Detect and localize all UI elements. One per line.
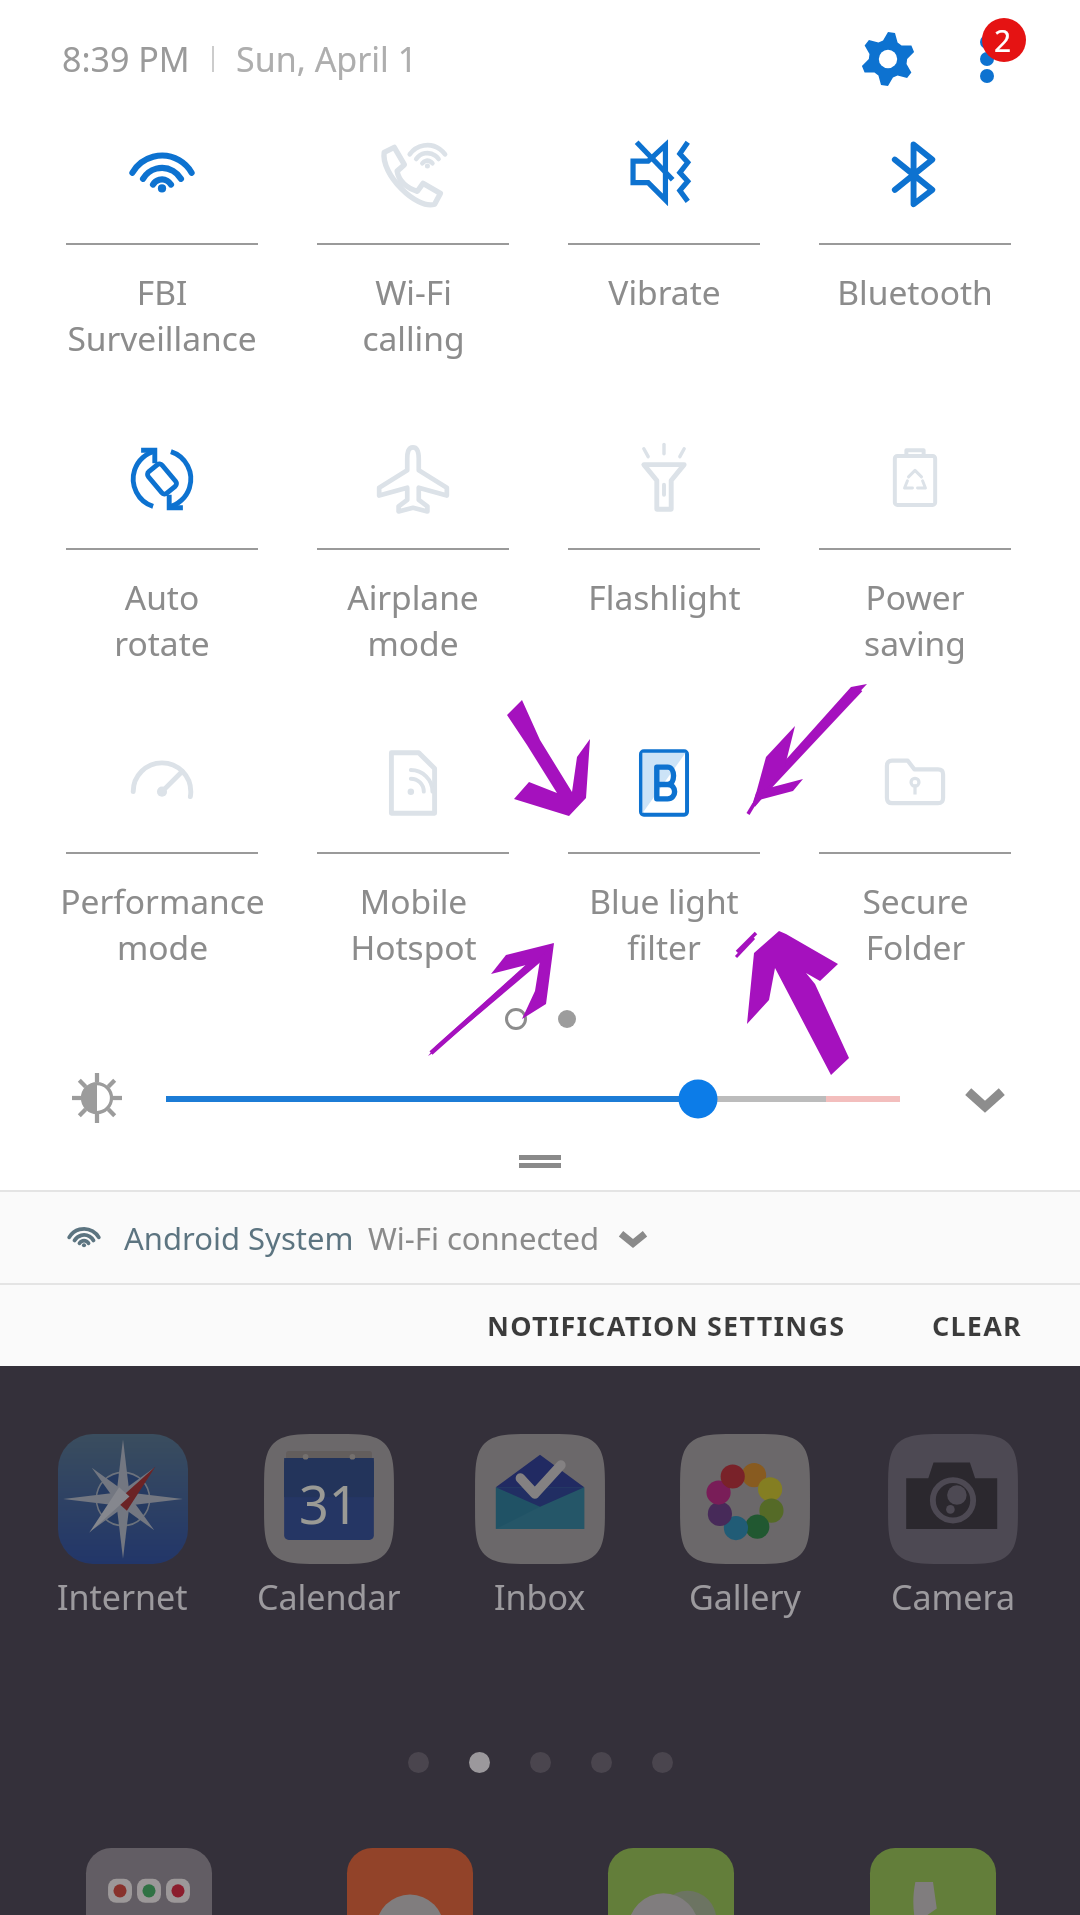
button[interactable]: Android System bbox=[0, 1192, 1080, 1283]
staticText: Performance mode bbox=[60, 878, 265, 970]
button[interactable]: Inbox bbox=[440, 1434, 640, 1624]
button[interactable]: Auto brightness bbox=[62, 1063, 132, 1133]
button[interactable] bbox=[347, 1848, 473, 1915]
staticText: Flashlight bbox=[588, 574, 741, 620]
button[interactable]: Power saving bbox=[790, 419, 1040, 659]
button[interactable] bbox=[870, 1848, 996, 1915]
button[interactable]: FBI Surveillance bbox=[37, 114, 287, 354]
staticText: Camera bbox=[891, 1574, 1015, 1620]
button[interactable]: Mobile Hotspot bbox=[288, 723, 538, 963]
staticText: 2 bbox=[994, 20, 1012, 61]
staticText: 31 bbox=[299, 1468, 359, 1539]
button[interactable]: Blue light filter bbox=[539, 723, 789, 963]
button[interactable]: Secure Folder bbox=[790, 723, 1040, 963]
button[interactable]: Auto rotate bbox=[37, 419, 287, 659]
button[interactable]: CLEAR bbox=[916, 1293, 1038, 1358]
button[interactable]: Flashlight bbox=[539, 419, 789, 659]
staticText: NOTIFICATION SETTINGS bbox=[487, 1307, 846, 1344]
button[interactable]: Vibrate bbox=[539, 114, 789, 354]
staticText: Sun, April 1 bbox=[236, 36, 418, 82]
staticText: Inbox bbox=[494, 1574, 586, 1620]
staticText: FBI Surveillance bbox=[67, 269, 257, 361]
staticText: Auto rotate bbox=[114, 574, 210, 666]
button[interactable]: Camera bbox=[853, 1434, 1053, 1624]
button[interactable]: Gallery bbox=[645, 1434, 845, 1624]
staticText: Internet bbox=[57, 1574, 188, 1620]
staticText: Power saving bbox=[864, 574, 966, 666]
button[interactable]: Performance mode bbox=[37, 723, 287, 963]
button[interactable]: Bluetooth bbox=[790, 114, 1040, 354]
button[interactable]: Wi-Fi calling bbox=[288, 114, 538, 354]
staticText: Android System bbox=[124, 1217, 354, 1259]
button[interactable]: Settings bbox=[845, 16, 931, 102]
button[interactable]: Airplane mode bbox=[288, 419, 538, 659]
button[interactable] bbox=[608, 1848, 734, 1915]
staticText: Bluetooth bbox=[837, 269, 993, 315]
button[interactable]: NOTIFICATION SETTINGS bbox=[471, 1293, 862, 1358]
staticText: 8:39 PM bbox=[62, 36, 190, 82]
staticText: Airplane mode bbox=[347, 574, 479, 666]
button[interactable]: Expand bbox=[948, 1061, 1022, 1135]
staticText: Vibrate bbox=[608, 269, 721, 315]
staticText: Mobile Hotspot bbox=[350, 878, 477, 970]
button[interactable]: 31 bbox=[229, 1434, 429, 1624]
button[interactable]: More options bbox=[952, 4, 1042, 94]
staticText: Gallery bbox=[689, 1574, 801, 1620]
staticText: CLEAR bbox=[932, 1307, 1022, 1344]
button[interactable]: Internet bbox=[22, 1434, 222, 1624]
staticText: Wi-Fi connected bbox=[368, 1217, 600, 1259]
staticText: Wi-Fi calling bbox=[362, 269, 465, 361]
staticText: Calendar bbox=[257, 1574, 401, 1620]
staticText: Blue light filter bbox=[589, 878, 739, 970]
staticText: Secure Folder bbox=[862, 878, 969, 970]
button[interactable] bbox=[86, 1848, 212, 1915]
